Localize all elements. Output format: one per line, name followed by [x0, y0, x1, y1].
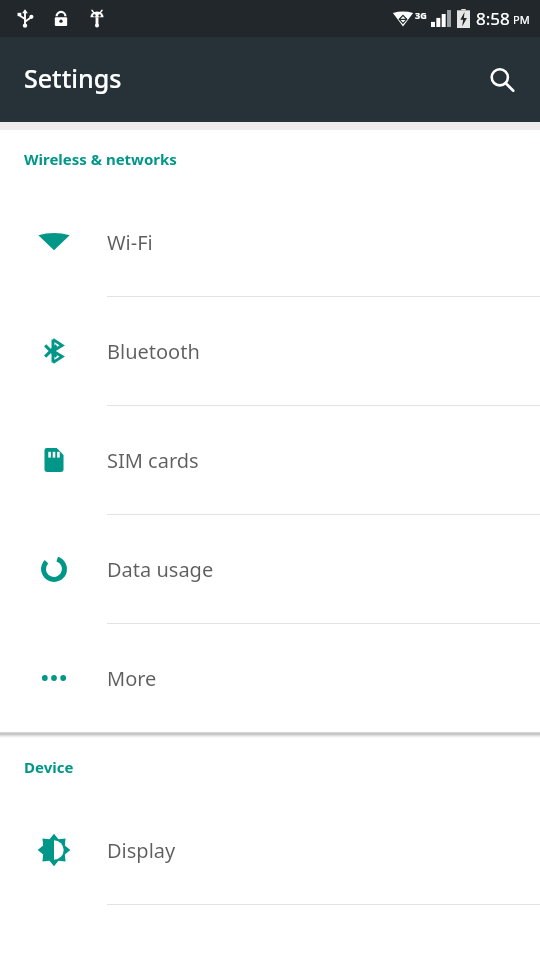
staticText: Device [24, 757, 74, 777]
staticText: More [107, 665, 157, 692]
staticText: Data usage [107, 556, 214, 583]
button[interactable]: More [0, 624, 540, 732]
button[interactable]: Data usage [0, 515, 540, 623]
button[interactable]: Search [476, 54, 528, 106]
staticText: Wireless & networks [24, 149, 177, 169]
staticText: Display [107, 837, 176, 864]
button[interactable]: Bluetooth [0, 297, 540, 405]
staticText: Wi-Fi [107, 229, 153, 256]
staticText: Settings [24, 61, 122, 95]
button[interactable]: Display [0, 796, 540, 904]
staticText: 3G [415, 9, 427, 21]
staticText: SIM cards [107, 447, 199, 474]
staticText: Bluetooth [107, 338, 200, 365]
staticText: PM [513, 12, 530, 27]
button[interactable]: SIM cards [0, 406, 540, 514]
staticText: 8:58 [476, 7, 510, 30]
button[interactable]: Wi-Fi [0, 188, 540, 296]
